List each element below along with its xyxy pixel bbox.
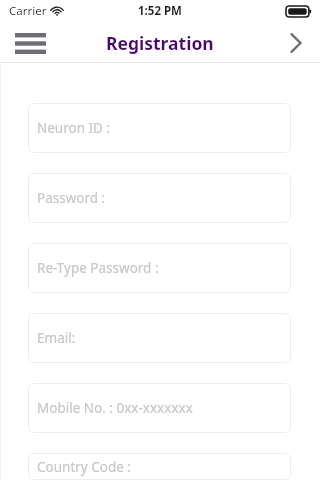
- button[interactable]: Email:: [28, 313, 291, 363]
- button[interactable]: Re-Type Password :: [28, 243, 291, 293]
- staticText: Email:: [37, 329, 76, 347]
- staticText: Registration: [106, 31, 214, 55]
- button[interactable]: Country Code :: [28, 453, 291, 480]
- staticText: Neuron ID :: [37, 119, 111, 137]
- staticText: 1:52 PM: [138, 3, 182, 19]
- button[interactable]: Password :: [28, 173, 291, 223]
- staticText: Password :: [37, 189, 106, 207]
- staticText: Re-Type Password :: [37, 259, 159, 277]
- staticText: Mobile No. : 0xx-xxxxxxx: [37, 399, 193, 417]
- staticText: Carrier: [9, 3, 47, 19]
- button[interactable]: Mobile No. : 0xx-xxxxxxx: [28, 383, 291, 433]
- button[interactable]: Neuron ID :: [28, 103, 291, 153]
- button[interactable]: Menu: [10, 26, 50, 60]
- button[interactable]: Next: [278, 25, 314, 61]
- staticText: Country Code :: [37, 458, 131, 476]
